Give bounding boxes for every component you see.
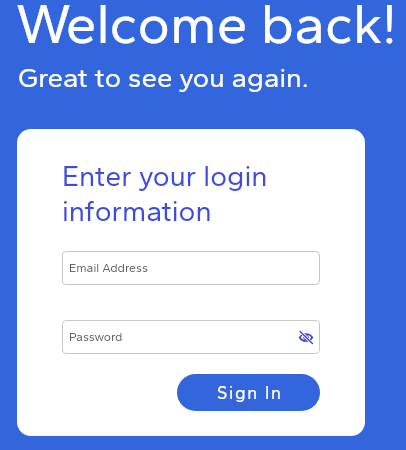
staticText: Great to see you again. [18, 61, 309, 94]
staticText: Enter your login information [62, 159, 268, 229]
staticText: Welcome back! [16, 0, 397, 57]
staticText: Sign In [217, 382, 283, 403]
button[interactable]: Email Address [62, 251, 320, 285]
button[interactable]: Password [62, 320, 320, 354]
button[interactable]: Show password [295, 326, 317, 348]
staticText: Password [69, 329, 123, 344]
button[interactable]: Sign In [177, 374, 320, 411]
staticText: Email Address [69, 260, 148, 275]
